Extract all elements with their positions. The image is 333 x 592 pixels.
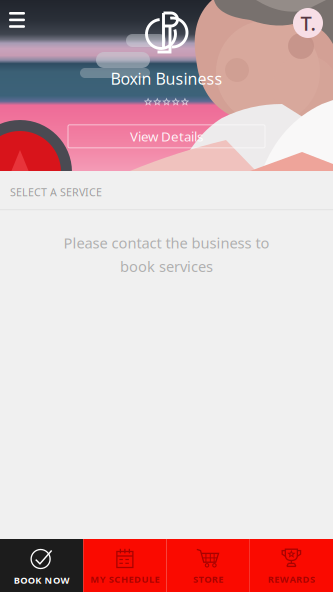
- button[interactable]: STORE: [166, 539, 250, 592]
- staticText: BOOK NOW: [14, 574, 69, 586]
- staticText: Please contact the business to: [63, 233, 269, 253]
- staticText: book services: [120, 257, 213, 276]
- staticText: Boxin Business: [110, 68, 222, 89]
- button[interactable]: Menu: [0, 0, 39, 42]
- button[interactable]: View Details: [68, 125, 265, 148]
- button[interactable]: Profile: [281, 0, 333, 50]
- staticText: MY SCHEDULE: [90, 573, 160, 585]
- staticText: STORE: [193, 573, 223, 585]
- staticText: SELECT A SERVICE: [10, 185, 102, 199]
- button[interactable]: REWARDS: [250, 539, 333, 592]
- button[interactable]: BOOK NOW: [0, 539, 83, 592]
- staticText: T.: [300, 10, 315, 36]
- button[interactable]: MY SCHEDULE: [83, 539, 166, 592]
- staticText: View Details: [130, 127, 203, 145]
- staticText: REWARDS: [268, 573, 315, 585]
